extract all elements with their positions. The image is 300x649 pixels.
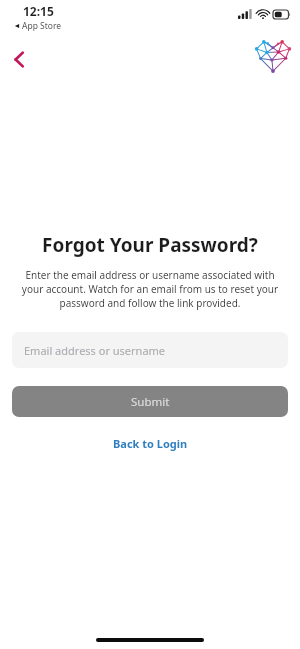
staticText: Submit (131, 394, 170, 410)
staticText: 12:15 (23, 3, 54, 19)
staticText: Forgot Your Password? (42, 232, 258, 258)
staticText: Email address or username (24, 343, 166, 358)
staticText: Enter the email address or username asso… (15, 268, 285, 310)
button[interactable]: Email address or username (12, 332, 288, 368)
button[interactable]: App logo (254, 36, 292, 74)
button[interactable]: Back to Login (95, 429, 206, 458)
staticText: App Store (22, 20, 62, 32)
button[interactable]: Submit (12, 386, 288, 417)
staticText: Back to Login (113, 436, 188, 451)
button[interactable]: Back (4, 44, 34, 74)
